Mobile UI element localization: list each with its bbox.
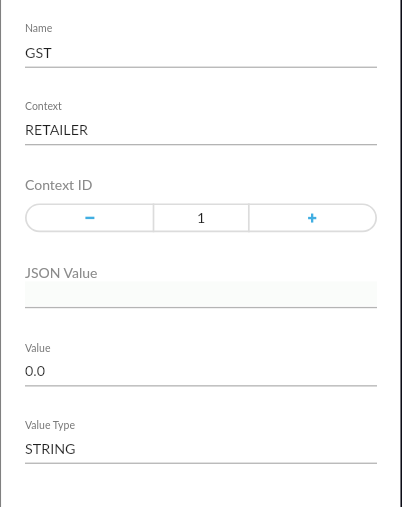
staticText: JSON Value: [25, 264, 98, 281]
staticText: GST: [25, 44, 52, 61]
staticText: 0.0: [25, 362, 45, 379]
staticText: Context ID: [25, 176, 93, 193]
staticText: Value Type: [25, 419, 75, 432]
staticText: STRING: [25, 440, 76, 457]
button[interactable]: Decrement context id: [25, 203, 154, 232]
staticText: Name: [25, 22, 53, 35]
staticText: Context: [25, 100, 62, 113]
button[interactable]: Increment context id: [249, 203, 377, 232]
staticText: 1: [197, 209, 206, 226]
staticText: RETAILER: [25, 121, 88, 138]
staticText: Value: [25, 342, 51, 355]
